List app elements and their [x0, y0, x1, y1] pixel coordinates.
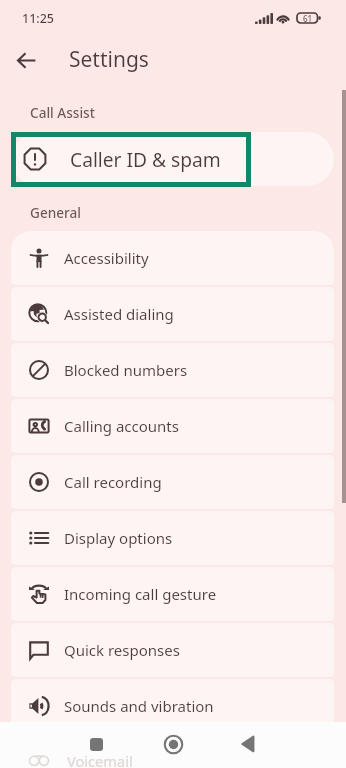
button[interactable]: Recents	[78, 726, 115, 763]
button[interactable]: Assisted dialing	[11, 287, 334, 341]
staticText: 61	[303, 13, 313, 24]
button[interactable]: Back	[6, 40, 47, 81]
button[interactable]: Sounds and vibration	[11, 679, 334, 733]
staticText: Call Assist	[30, 103, 95, 122]
button[interactable]: Incoming call gesture	[11, 567, 334, 621]
button[interactable]: Quick responses	[11, 623, 334, 677]
button[interactable]: Accessibility	[11, 231, 334, 285]
staticText: Calling accounts	[64, 416, 179, 436]
staticText: Assisted dialing	[64, 304, 174, 324]
button[interactable]: Calling accounts	[11, 399, 334, 453]
staticText: Blocked numbers	[64, 360, 188, 380]
staticText: Quick responses	[64, 640, 180, 660]
staticText: Call recording	[64, 472, 162, 492]
staticText: Display options	[64, 528, 173, 548]
staticText: 11:25	[22, 10, 55, 27]
button[interactable]: Caller ID & spam	[11, 132, 334, 186]
staticText: Incoming call gesture	[64, 584, 217, 604]
button[interactable]: Blocked numbers	[11, 343, 334, 397]
button[interactable]: Display options	[11, 511, 334, 565]
staticText: Settings	[69, 45, 149, 74]
staticText: Accessibility	[64, 248, 149, 268]
staticText: Sounds and vibration	[64, 696, 214, 716]
button[interactable]: Back	[230, 726, 266, 762]
staticText: Caller ID & spam	[70, 146, 221, 172]
button[interactable]: Home	[155, 726, 192, 763]
staticText: General	[30, 203, 81, 222]
staticText: Voicemail	[67, 751, 133, 768]
button[interactable]: Call recording	[11, 455, 334, 509]
